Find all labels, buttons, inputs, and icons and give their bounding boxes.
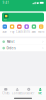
button[interactable]: Bills (23, 24, 30, 33)
button[interactable]: Me (34, 87, 46, 95)
staticText: Contacts (12, 91, 23, 95)
button[interactable]: Scan (1, 24, 8, 33)
button[interactable]: More (38, 24, 44, 33)
staticText: Me (38, 91, 42, 95)
button[interactable]: Orders (0, 45, 46, 51)
staticText: Orders (7, 46, 16, 50)
staticText: Save (31, 30, 36, 33)
staticText: Scan (2, 30, 7, 33)
button[interactable]: Cards (16, 24, 23, 33)
button[interactable]: Contacts (11, 87, 23, 95)
button[interactable]: Chats (0, 87, 11, 95)
staticText: Cards (16, 30, 23, 33)
staticText: Wallet (7, 40, 15, 43)
button[interactable]: Save (31, 24, 37, 33)
staticText: Chats (2, 91, 9, 95)
staticText: 9:41 (2, 1, 9, 4)
staticText: Pay (10, 30, 14, 33)
button[interactable]: Wallet (0, 39, 46, 45)
button[interactable]: Discover (23, 87, 34, 95)
staticText: More (38, 30, 44, 33)
staticText: Discover (23, 91, 34, 95)
button[interactable]: Pay (2, 13, 44, 22)
button[interactable]: Pay (9, 24, 15, 33)
staticText: Bills (24, 30, 30, 33)
staticText: Pay (4, 19, 7, 21)
